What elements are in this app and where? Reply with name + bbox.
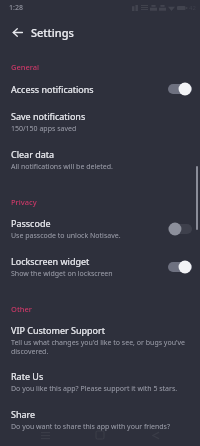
button[interactable]: Save notifications xyxy=(0,103,200,141)
staticText: Do you like this app? Please support it … xyxy=(11,384,178,394)
button[interactable]: Clear data xyxy=(0,141,200,179)
staticText: Use passcode to unlock Notisave. xyxy=(11,231,121,241)
button[interactable]: Passcode xyxy=(0,210,200,248)
button[interactable]: Back xyxy=(145,425,165,445)
staticText: Tell us what changes you'd like to see, … xyxy=(11,338,192,356)
button[interactable]: Lockscreen widget xyxy=(0,248,200,286)
button[interactable]: On xyxy=(168,82,192,96)
button[interactable]: Access notifications xyxy=(0,75,200,103)
staticText: Clear data xyxy=(11,148,55,160)
staticText: VIP Customer Support xyxy=(11,324,106,336)
button[interactable]: Off xyxy=(168,222,192,236)
staticText: Show the widget on lockscreen xyxy=(11,269,113,279)
button[interactable]: Rate Us xyxy=(0,363,200,401)
button[interactable]: Back xyxy=(6,21,28,43)
staticText: Rate Us xyxy=(11,370,44,382)
staticText: Lockscreen widget xyxy=(11,255,90,267)
staticText: Settings xyxy=(31,25,74,40)
button[interactable]: Share xyxy=(0,401,200,439)
staticText: General xyxy=(11,62,40,72)
staticText: Share xyxy=(11,408,36,420)
staticText: Do you want to share this app with your … xyxy=(11,422,171,432)
staticText: 150/150 apps saved xyxy=(11,124,77,134)
staticText: 42 xyxy=(189,4,196,12)
staticText: Access notifications xyxy=(11,83,94,95)
button[interactable]: VIP Customer Support xyxy=(0,317,200,363)
staticText: Save notifications xyxy=(11,110,86,122)
button[interactable]: Recents xyxy=(35,425,55,445)
button[interactable]: Home xyxy=(90,425,110,445)
button[interactable]: On xyxy=(168,260,192,274)
staticText: 1:28 xyxy=(9,3,23,13)
staticText: Privacy xyxy=(11,197,37,207)
staticText: All notifications will be deleted. xyxy=(11,162,113,172)
staticText: Passcode xyxy=(11,217,51,229)
staticText: Other xyxy=(11,304,32,314)
